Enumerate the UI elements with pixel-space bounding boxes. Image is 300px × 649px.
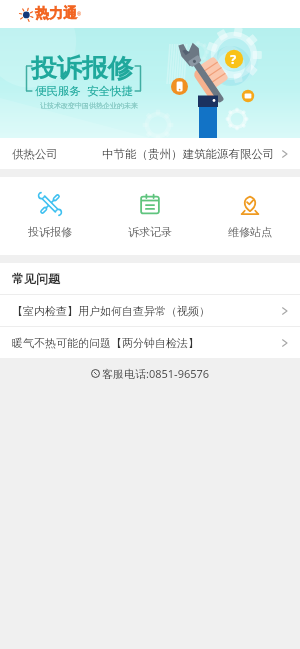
button[interactable]: 供热公司: [0, 138, 300, 169]
staticText: 热力通: [35, 5, 77, 23]
button[interactable]: 客服电话:0851-96576: [0, 358, 300, 388]
staticText: 投诉报修: [28, 225, 72, 239]
other: 诉求记录: [138, 192, 162, 216]
button[interactable]: 诉求记录: [100, 177, 200, 239]
staticText: ®: [77, 11, 82, 18]
staticText: 便民服务 安全快捷: [35, 83, 133, 99]
staticText: 诉求记录: [128, 225, 172, 239]
staticText: 维修站点: [228, 225, 272, 239]
staticText: ?: [230, 50, 237, 68]
staticText: 让技术改变中国供热企业的未来: [40, 101, 138, 110]
button[interactable]: 投诉报修: [0, 177, 100, 239]
staticText: 中节能（贵州）建筑能源有限公司: [102, 147, 275, 161]
staticText: 暖气不热可能的问题【两分钟自检法】: [12, 336, 199, 350]
button[interactable]: 暖气不热可能的问题【两分钟自检法】: [0, 327, 300, 358]
other: 维修站点: [238, 192, 262, 216]
staticText: 常见问题: [12, 271, 60, 286]
other: 投诉报修: [37, 191, 63, 217]
button[interactable]: 【室内检查】用户如何自查异常（视频）: [0, 295, 300, 326]
button[interactable]: 维修站点: [200, 177, 300, 239]
staticText: 【室内检查】用户如何自查异常（视频）: [12, 304, 210, 318]
staticText: 客服电话:0851-96576: [102, 366, 210, 381]
staticText: 供热公司: [12, 147, 58, 161]
staticText: 投诉报修: [31, 52, 133, 84]
